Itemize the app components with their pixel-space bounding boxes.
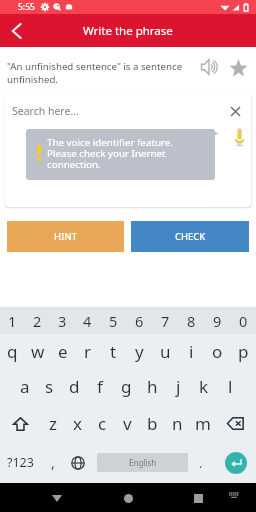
button[interactable]: x [65,404,90,443]
staticText: 3 [58,311,67,331]
button[interactable]: ?123 [0,443,41,482]
staticText: 8 [187,311,196,331]
button[interactable]: c [90,404,115,443]
staticText: x [73,412,82,435]
staticText: Search here... [12,104,79,118]
staticText: y [135,340,144,363]
staticText: 2 [33,311,42,331]
button[interactable]: k [191,369,217,404]
staticText: r [84,340,92,363]
staticText: p [238,340,249,363]
staticText: a [20,375,30,398]
button[interactable]: , [41,443,65,482]
button[interactable]: 5 [100,307,126,334]
staticText: k [199,375,209,398]
button[interactable]: Backspace [215,404,256,443]
staticText: h [147,375,158,398]
button[interactable]: 2 [25,307,50,334]
button[interactable]: y [126,334,152,369]
button[interactable]: Home [114,484,142,512]
button[interactable]: r [75,334,100,369]
staticText: q [7,340,18,363]
button[interactable]: English [97,453,188,472]
staticText: l [228,375,233,398]
staticText: u [160,340,171,363]
button[interactable]: v [115,404,140,443]
button[interactable]: g [113,369,139,404]
button[interactable]: a [12,369,37,404]
staticText: Write the phrase [83,23,173,39]
staticText: g [121,375,132,398]
button[interactable]: i [178,334,204,369]
button[interactable]: z [40,404,65,443]
button[interactable]: q [0,334,25,369]
button[interactable]: h [139,369,165,404]
button[interactable]: b [140,404,165,443]
button[interactable]: n [165,404,190,443]
button[interactable]: 9 [204,307,230,334]
button[interactable]: 7 [152,307,178,334]
staticText: . [199,455,203,471]
staticText: o [212,340,223,363]
staticText: English [129,457,157,468]
button[interactable]: 8 [178,307,204,334]
staticText: 5 [109,311,118,331]
button[interactable]: t [100,334,126,369]
button[interactable]: 6 [126,307,152,334]
button[interactable]: j [165,369,191,404]
button[interactable]: Clear [225,101,246,122]
staticText: CHECK [175,230,206,243]
button[interactable]: u [152,334,178,369]
staticText: w [31,340,45,363]
staticText: c [98,412,107,435]
staticText: z [49,412,57,435]
staticText: n [172,412,183,435]
button[interactable]: d [62,369,87,404]
button[interactable]: Recents [184,484,212,512]
button[interactable]: f [87,369,113,404]
button[interactable]: Enter [214,443,256,482]
staticText: d [69,375,80,398]
staticText: t [110,340,117,363]
staticText: v [123,412,132,435]
staticText: 6 [135,311,144,331]
button[interactable]: 4 [75,307,100,334]
staticText: 5:55 [18,1,35,13]
button[interactable]: Keyboard [223,484,245,506]
staticText: , [51,453,55,472]
staticText: b [147,412,158,435]
button[interactable]: p [230,334,256,369]
staticText: HINT [54,230,77,243]
button[interactable]: o [204,334,230,369]
staticText: 1 [8,311,17,331]
staticText: s [45,375,54,398]
button[interactable]: Back [43,484,71,512]
button[interactable]: 3 [50,307,75,334]
staticText: "An unfinished sentence" is a sentence u… [7,60,195,86]
button[interactable]: Shift [0,404,40,443]
staticText: 0 [239,311,248,331]
button[interactable]: Change language [65,443,91,482]
button[interactable]: Back [0,14,32,47]
button[interactable]: . [190,443,212,482]
button[interactable]: Favourite [226,55,251,80]
button[interactable]: Play sound [197,55,221,79]
button[interactable]: l [217,369,243,404]
button[interactable]: CHECK [131,221,249,252]
staticText: The voice identifier feature. Please che… [47,136,173,171]
staticText: 9 [213,311,222,331]
staticText: ?123 [7,454,34,471]
button[interactable]: 1 [0,307,25,334]
button[interactable]: e [50,334,75,369]
button[interactable]: HINT [7,221,124,252]
staticText: i [189,340,194,363]
staticText: f [97,375,103,398]
button[interactable]: m [190,404,215,443]
button[interactable]: 0 [230,307,256,334]
button[interactable]: s [37,369,62,404]
staticText: m [195,412,211,435]
staticText: e [58,340,68,363]
button[interactable]: w [25,334,50,369]
button[interactable]: Microphone [226,124,251,150]
staticText: j [176,375,181,398]
